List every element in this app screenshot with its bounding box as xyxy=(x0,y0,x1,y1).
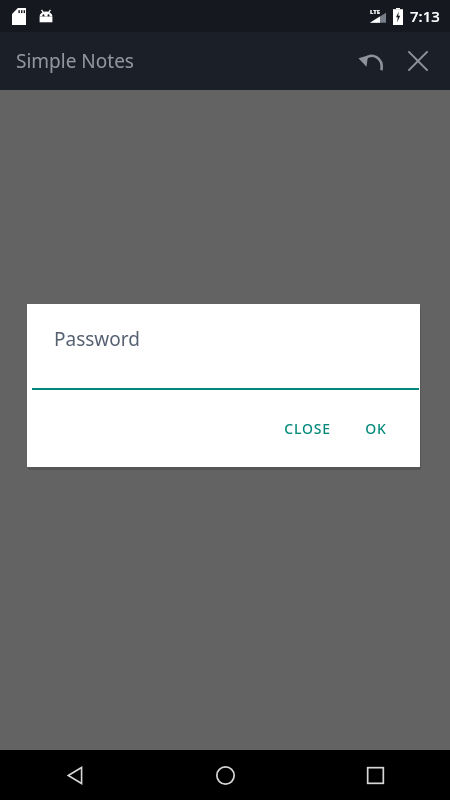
button[interactable]: CLOSE xyxy=(272,409,343,448)
staticText: CLOSE xyxy=(284,419,331,438)
staticText: OK xyxy=(365,419,387,438)
button[interactable]: Close xyxy=(394,37,442,85)
staticText: Simple Notes xyxy=(16,48,134,74)
staticText: 7:13 xyxy=(410,6,440,26)
button[interactable]: Undo xyxy=(346,37,394,85)
button[interactable]: Back xyxy=(0,750,150,800)
button[interactable]: Home xyxy=(150,750,300,800)
button[interactable]: Recent apps xyxy=(300,750,450,800)
staticText: LTE xyxy=(370,8,381,16)
staticText: Password xyxy=(54,326,140,352)
button[interactable]: OK xyxy=(353,409,399,448)
